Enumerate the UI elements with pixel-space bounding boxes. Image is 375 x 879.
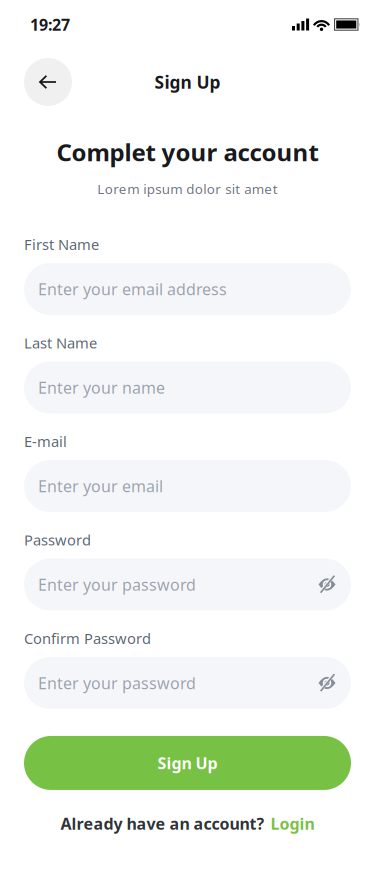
staticText: Enter your password [38, 574, 196, 595]
button[interactable]: Back [24, 58, 72, 106]
staticText: First Name [24, 235, 99, 254]
staticText: Enter your email [38, 475, 163, 497]
staticText: Enter your password [38, 672, 196, 693]
staticText: Already have an account? [60, 813, 264, 834]
button[interactable]: Show password [314, 670, 340, 696]
staticText: Sign Up [157, 752, 217, 773]
staticText: Password [24, 530, 91, 549]
staticText: Last Name [24, 333, 97, 353]
staticText: Login [270, 813, 314, 834]
staticText: Enter your name [38, 377, 165, 398]
staticText: Lorem ipsum dolor sit amet [97, 180, 278, 198]
staticText: Sign Up [154, 70, 220, 93]
button[interactable]: Sign Up [24, 736, 351, 790]
staticText: Complet your account [56, 136, 318, 168]
staticText: 19:27 [30, 14, 70, 35]
staticText: Confirm Password [24, 628, 151, 648]
staticText: E-mail [24, 431, 67, 451]
button[interactable]: Show password [314, 571, 340, 597]
button[interactable]: Login [270, 813, 314, 834]
staticText: Enter your email address [38, 278, 227, 300]
